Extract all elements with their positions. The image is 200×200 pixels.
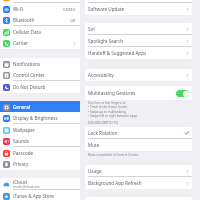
staticText: USE SIDE SWITCH TO: <box>88 121 119 125</box>
button[interactable]: Airplane Mode <box>0 0 80 3</box>
button[interactable]: Passcode <box>0 147 80 159</box>
button[interactable]: Bluetooth <box>0 14 80 26</box>
other: Toggle Multitasking Gestures <box>176 90 189 97</box>
button[interactable]: Accessibility <box>85 69 192 81</box>
button[interactable]: Spotlight Search <box>85 35 192 47</box>
staticText: • Swipe up to multitasking <box>88 110 126 114</box>
staticText: Usage <box>88 168 186 174</box>
staticText: Display & Brightness <box>13 115 58 121</box>
staticText: Wallpaper <box>13 127 35 133</box>
button[interactable]: Wi-Fi <box>0 3 80 15</box>
button[interactable]: General <box>0 101 80 113</box>
staticText: Multitasking Gestures <box>88 90 176 96</box>
staticText: Lock Rotation <box>88 130 185 136</box>
staticText: Passcode <box>13 150 34 156</box>
staticText: Accessibility <box>88 72 186 78</box>
button[interactable]: Multitasking Gestures <box>85 86 192 100</box>
staticText: Cellular Data <box>13 29 41 35</box>
staticText: Spotlight Search <box>88 38 186 44</box>
button[interactable]: Sounds <box>0 135 80 147</box>
button[interactable]: Display & Brightness <box>0 112 80 124</box>
button[interactable]: Background App Refresh <box>85 177 192 189</box>
staticText: Sounds <box>13 138 30 144</box>
button[interactable]: Handoff & Suggested Apps <box>85 47 192 59</box>
button[interactable]: Wallpaper <box>0 124 80 136</box>
staticText: • Swipe left or right between apps <box>88 114 138 118</box>
button[interactable]: Control Center <box>0 69 80 81</box>
staticText: • Pinch to the Home Screen <box>88 105 128 109</box>
button[interactable]: Do Not Disturb <box>0 81 80 93</box>
staticText: Control Center <box>13 72 45 78</box>
button[interactable]: Privacy <box>0 158 80 170</box>
button[interactable]: Carrier <box>0 37 80 49</box>
staticText: Software Update <box>88 6 186 12</box>
staticText: Background App Refresh <box>88 180 186 186</box>
button[interactable]: Notifications <box>0 58 80 70</box>
staticText: General <box>13 104 30 110</box>
button[interactable]: Software Update <box>85 3 192 15</box>
staticText: Do Not Disturb <box>13 84 46 90</box>
staticText: sender@icloud.com <box>13 185 40 189</box>
staticText: Privacy <box>13 161 29 167</box>
button[interactable]: iCloud <box>0 178 80 190</box>
staticText: Mute <box>88 142 189 148</box>
staticText: Use four or five fingers to: <box>88 101 126 105</box>
staticText: Wi-Fi <box>13 6 24 12</box>
button[interactable]: iTunes & App Store <box>0 190 80 200</box>
button[interactable]: Siri <box>85 23 192 35</box>
staticText: Mute is available in Control Center. <box>88 153 139 157</box>
button[interactable]: About <box>85 0 192 3</box>
staticText: iTunes & App Store <box>13 193 54 199</box>
staticText: Bluetooth <box>13 17 35 23</box>
button[interactable]: Mute <box>85 139 192 151</box>
staticText: GIZMO <box>63 7 76 12</box>
staticText: Off <box>70 18 76 23</box>
staticText: Siri <box>88 26 186 32</box>
button[interactable]: Cellular Data <box>0 26 80 38</box>
staticText: iCloud <box>13 179 27 185</box>
staticText: Carrier <box>13 40 28 46</box>
button[interactable]: Usage <box>85 165 192 177</box>
staticText: Notifications <box>13 61 41 67</box>
staticText: Handoff & Suggested Apps <box>88 50 186 56</box>
button[interactable]: Lock Rotation <box>85 127 192 139</box>
